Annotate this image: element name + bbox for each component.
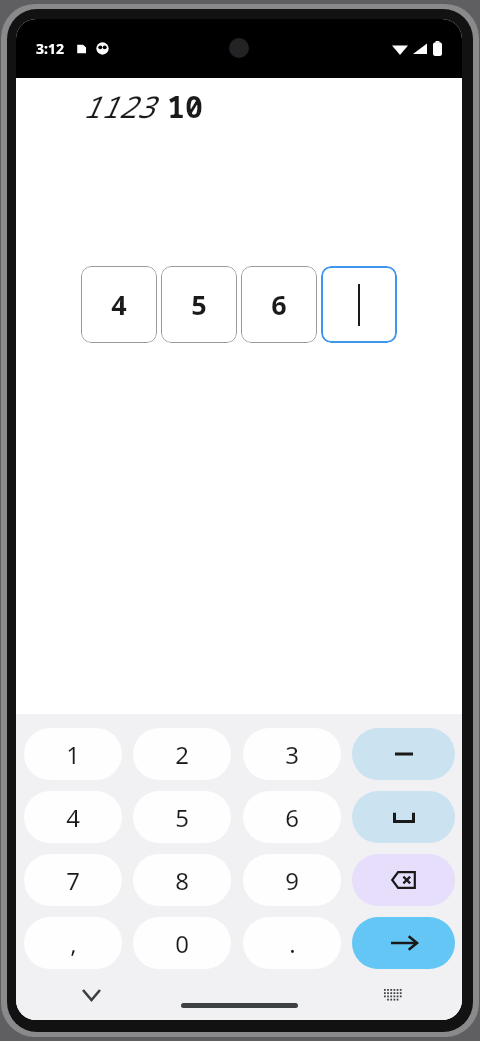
- button[interactable]: 1: [24, 728, 122, 780]
- button[interactable]: 5: [161, 266, 237, 343]
- button[interactable]: 7: [24, 854, 122, 906]
- button[interactable]: Space: [352, 791, 455, 843]
- staticText: 0: [175, 927, 189, 960]
- button[interactable]: 6: [241, 266, 317, 343]
- staticText: 2: [175, 738, 189, 771]
- staticText: 5: [175, 801, 189, 834]
- button[interactable]: Enter: [352, 917, 455, 969]
- staticText: 4: [111, 286, 127, 323]
- button[interactable]: Hide keyboard: [74, 978, 108, 1012]
- staticText: 9: [285, 864, 299, 897]
- staticText: .: [289, 927, 296, 960]
- staticText: ,: [70, 927, 77, 960]
- staticText: 3:12: [36, 39, 64, 58]
- button[interactable]: Backspace: [352, 854, 455, 906]
- staticText: 5: [191, 286, 207, 323]
- button[interactable]: 2: [133, 728, 231, 780]
- staticText: 7: [66, 864, 80, 897]
- button[interactable]: [321, 266, 397, 343]
- button[interactable]: 8: [133, 854, 231, 906]
- button[interactable]: 4: [81, 266, 157, 343]
- button[interactable]: 9: [243, 854, 341, 906]
- staticText: 1: [66, 738, 80, 771]
- staticText: 4: [66, 801, 80, 834]
- button[interactable]: Switch keyboard: [376, 978, 410, 1012]
- staticText: 10: [167, 86, 203, 127]
- button[interactable]: Minus: [352, 728, 455, 780]
- button[interactable]: 4: [24, 791, 122, 843]
- button[interactable]: ,: [24, 917, 122, 969]
- button[interactable]: 5: [133, 791, 231, 843]
- staticText: 6: [285, 801, 299, 834]
- staticText: 8: [175, 864, 189, 897]
- button[interactable]: 0: [133, 917, 231, 969]
- staticText: 6: [271, 286, 287, 323]
- button[interactable]: .: [243, 917, 341, 969]
- button[interactable]: 6: [243, 791, 341, 843]
- staticText: 3: [285, 738, 299, 771]
- staticText: 1123: [82, 86, 154, 127]
- button[interactable]: 3: [243, 728, 341, 780]
